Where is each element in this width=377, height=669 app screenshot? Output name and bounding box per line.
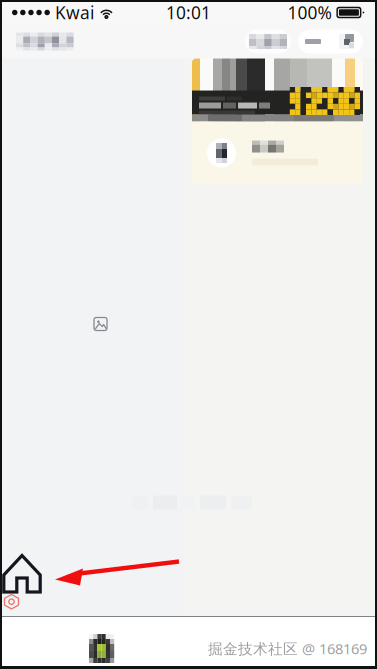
staticText: Kwai	[55, 1, 94, 24]
staticText: 100%	[287, 1, 331, 24]
button[interactable]: Home	[2, 553, 44, 611]
button[interactable]: More	[298, 29, 363, 53]
button[interactable]: Feed item	[192, 58, 363, 184]
button[interactable]: Category	[245, 29, 291, 53]
button[interactable]: Title	[2, 23, 88, 59]
button[interactable]: Tab	[83, 629, 120, 668]
staticText: 掘金技术社区 @ 168169	[208, 639, 367, 658]
staticText: 10:01	[166, 1, 211, 24]
